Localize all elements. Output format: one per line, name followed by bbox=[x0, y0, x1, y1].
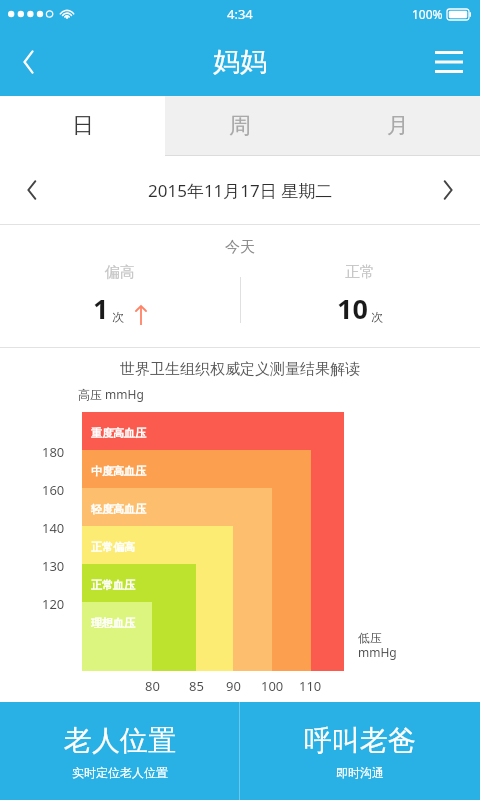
button[interactable]: 正常 bbox=[240, 225, 480, 347]
staticText: 100% bbox=[412, 6, 443, 22]
staticText: 妈妈 bbox=[213, 45, 267, 79]
staticText: 低压 mmHg bbox=[358, 630, 397, 660]
staticText: 轻度高血压 bbox=[91, 502, 146, 516]
staticText: 重度高血压 bbox=[91, 426, 146, 440]
staticText: 160 bbox=[42, 481, 65, 499]
button[interactable]: Next day bbox=[416, 156, 480, 224]
staticText: 180 bbox=[42, 443, 65, 461]
staticText: 周 bbox=[229, 112, 251, 140]
staticText: 120 bbox=[42, 595, 65, 613]
staticText: 110 bbox=[299, 677, 322, 695]
staticText: 实时定位老人位置 bbox=[72, 765, 168, 780]
button[interactable]: Menu bbox=[418, 28, 480, 96]
staticText: 呼叫老爸 bbox=[304, 723, 416, 758]
staticText: 130 bbox=[42, 557, 65, 575]
button[interactable]: 偏高 bbox=[0, 225, 240, 347]
staticText: 1 bbox=[93, 290, 109, 327]
staticText: 10 bbox=[337, 290, 368, 327]
button[interactable]: 月 bbox=[315, 96, 480, 156]
staticText: 正常偏高 bbox=[91, 540, 135, 554]
staticText: 次 bbox=[371, 309, 383, 324]
staticText: 85 bbox=[189, 677, 204, 695]
staticText: 日 bbox=[72, 112, 94, 140]
staticText: 偏高 bbox=[105, 263, 135, 282]
staticText: 老人位置 bbox=[64, 723, 176, 758]
button[interactable]: 日 bbox=[0, 96, 165, 156]
button[interactable]: 呼叫老爸 bbox=[240, 702, 480, 800]
staticText: 80 bbox=[145, 677, 160, 695]
staticText: 2015年11月17日 星期二 bbox=[148, 179, 333, 202]
staticText: 正常 bbox=[345, 263, 375, 282]
staticText: 中度高血压 bbox=[91, 464, 146, 478]
staticText: 100 bbox=[261, 677, 284, 695]
button[interactable]: Back bbox=[0, 28, 58, 96]
staticText: 正常血压 bbox=[91, 578, 135, 592]
staticText: 理想血压 bbox=[91, 616, 135, 630]
staticText: 月 bbox=[387, 112, 409, 140]
staticText: 次 bbox=[112, 309, 124, 324]
button[interactable]: 周 bbox=[165, 96, 315, 156]
staticText: 今天 bbox=[225, 238, 255, 257]
button[interactable]: 老人位置 bbox=[0, 702, 239, 800]
staticText: 140 bbox=[42, 519, 65, 537]
staticText: 即时沟通 bbox=[336, 765, 384, 780]
staticText: 高压 mmHg bbox=[78, 386, 144, 402]
staticText: 世界卫生组织权威定义测量结果解读 bbox=[120, 360, 360, 379]
staticText: 4:34 bbox=[227, 5, 253, 23]
button[interactable]: Previous day bbox=[0, 156, 64, 224]
staticText: 90 bbox=[226, 677, 241, 695]
